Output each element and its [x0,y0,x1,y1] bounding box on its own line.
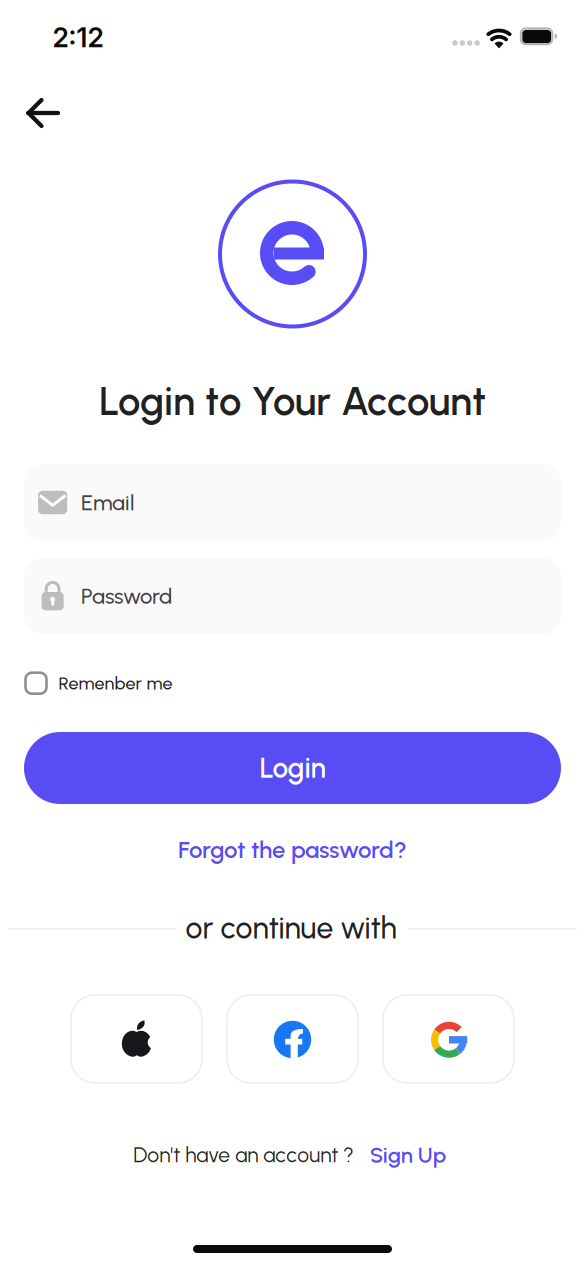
button[interactable]: Forgot the password? [178,835,407,864]
staticText: Email [81,489,134,516]
staticText: Forgot the password? [178,835,407,864]
button[interactable]: Sign in with Apple [71,995,202,1083]
button[interactable]: Sign Up [370,1142,446,1168]
staticText: 2:12 [52,21,103,54]
button[interactable]: Login [24,732,561,804]
staticText: Don't have an account ? [133,1142,354,1168]
staticText: Sign Up [370,1142,446,1168]
staticText: Password [81,583,172,609]
button[interactable]: Remenber me [25,672,172,694]
staticText: Login [259,751,325,785]
button[interactable]: Sign in with Facebook [227,995,358,1083]
staticText: Login to Your Account [99,377,486,425]
button[interactable]: Back [20,91,64,135]
button[interactable]: Email [24,464,561,541]
button[interactable]: Password [24,558,561,634]
button[interactable]: Sign in with Google [383,995,514,1083]
staticText: Remenber me [58,672,172,694]
staticText: or continue with [185,910,396,946]
